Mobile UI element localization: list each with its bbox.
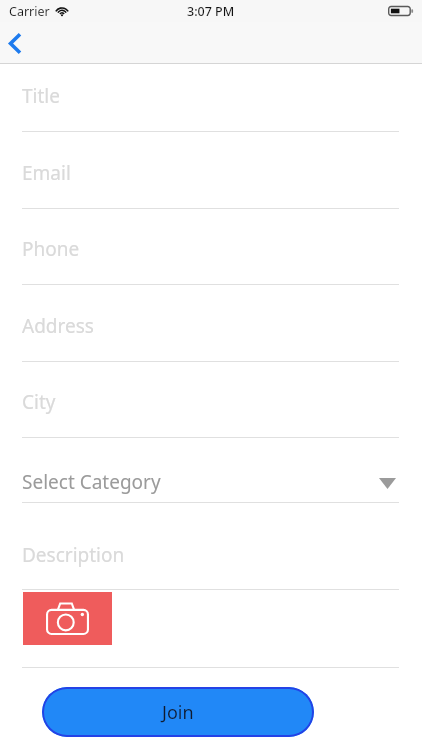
staticText: Select Category [22,469,161,495]
button[interactable]: Description [0,540,422,590]
button[interactable]: Back [0,22,42,64]
staticText: Join [162,700,194,725]
staticText: Title [22,83,60,109]
button[interactable]: Select Category [0,466,422,514]
button[interactable]: City [0,388,422,450]
button[interactable]: Phone [0,235,422,297]
staticText: Email [22,160,71,186]
staticText: Description [22,542,125,568]
staticText: Carrier [9,3,50,20]
button[interactable]: Join [42,687,314,737]
staticText: Address [22,313,94,339]
staticText: Phone [22,236,80,262]
button[interactable]: Address [0,312,422,374]
staticText: City [22,389,56,415]
button[interactable]: Take photo [23,592,112,645]
button[interactable]: Email [0,159,422,221]
staticText: 3:07 PM [187,3,235,20]
button[interactable]: Title [0,82,422,144]
